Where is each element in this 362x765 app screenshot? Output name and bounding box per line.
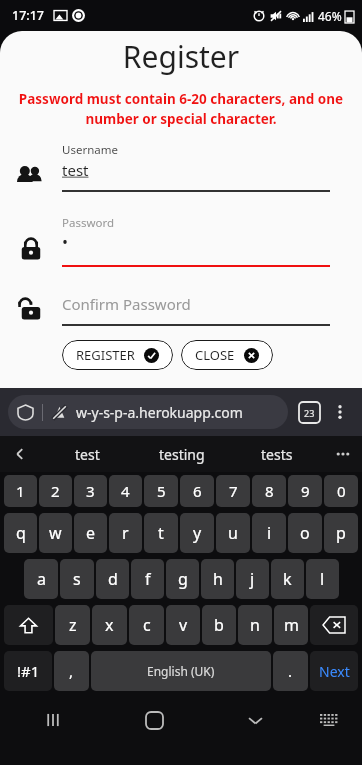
button[interactable]: b bbox=[202, 605, 236, 645]
staticText: c bbox=[143, 614, 151, 636]
button[interactable]: j bbox=[236, 559, 269, 599]
button[interactable]: English (UK) bbox=[91, 651, 271, 691]
button[interactable]: 8 bbox=[252, 475, 286, 507]
button[interactable]: Recents bbox=[31, 698, 75, 742]
button[interactable]: Change keyboard bbox=[307, 698, 351, 742]
staticText: test bbox=[75, 445, 100, 464]
staticText: 7 bbox=[229, 481, 238, 501]
button[interactable]: More suggestions bbox=[324, 436, 362, 472]
staticText: x bbox=[105, 614, 114, 636]
button[interactable]: 4 bbox=[109, 475, 142, 507]
button[interactable]: tests bbox=[229, 436, 324, 472]
staticText: e bbox=[86, 522, 96, 544]
button[interactable]: 1 bbox=[4, 475, 37, 507]
button[interactable]: w-y-s-p-a.herokuapp.com bbox=[8, 395, 288, 429]
button[interactable]: Hide keyboard bbox=[233, 698, 277, 742]
staticText: y bbox=[193, 522, 202, 544]
staticText: 5 bbox=[157, 481, 166, 501]
staticText: w-y-s-p-a.herokuapp.com bbox=[76, 403, 243, 422]
staticText: r bbox=[122, 522, 129, 544]
button[interactable]: Back bbox=[0, 436, 40, 472]
button[interactable]: m bbox=[274, 605, 308, 645]
button[interactable]: s bbox=[60, 559, 94, 599]
button[interactable]: . bbox=[273, 651, 308, 691]
button[interactable]: r bbox=[109, 513, 142, 553]
staticText: Next bbox=[319, 662, 350, 681]
button[interactable]: Backspace bbox=[310, 605, 358, 645]
button[interactable]: !#1 bbox=[4, 651, 52, 691]
button[interactable]: Shift bbox=[4, 605, 53, 645]
button[interactable]: p bbox=[324, 513, 358, 553]
button[interactable]: l bbox=[306, 559, 339, 599]
button[interactable]: w bbox=[39, 513, 72, 553]
staticText: w bbox=[49, 522, 62, 544]
button[interactable]: q bbox=[4, 513, 37, 553]
staticText: p bbox=[336, 522, 346, 544]
staticText: 9 bbox=[301, 481, 310, 501]
button[interactable]: t bbox=[144, 513, 178, 553]
button[interactable]: testing bbox=[134, 436, 229, 472]
staticText: q bbox=[16, 522, 26, 544]
button[interactable]: 9 bbox=[288, 475, 322, 507]
button[interactable]: c bbox=[129, 605, 164, 645]
button[interactable]: 6 bbox=[180, 475, 214, 507]
staticText: 1 bbox=[16, 481, 25, 501]
button[interactable]: test bbox=[40, 436, 134, 472]
button[interactable]: h bbox=[201, 559, 234, 599]
button[interactable]: y bbox=[180, 513, 214, 553]
staticText: i bbox=[267, 522, 272, 544]
staticText: 6 bbox=[193, 481, 202, 501]
staticText: 0 bbox=[337, 481, 346, 501]
button[interactable]: o bbox=[288, 513, 322, 553]
button[interactable]: e bbox=[74, 513, 107, 553]
button[interactable]: CLOSE bbox=[181, 340, 273, 370]
staticText: h bbox=[213, 568, 223, 590]
staticText: testing bbox=[159, 445, 205, 464]
staticText: n bbox=[250, 614, 260, 636]
staticText: u bbox=[228, 522, 238, 544]
staticText: a bbox=[37, 568, 46, 590]
staticText: l bbox=[320, 568, 325, 590]
staticText: m bbox=[284, 614, 299, 636]
staticText: d bbox=[108, 568, 118, 590]
button[interactable]: n bbox=[238, 605, 272, 645]
staticText: , bbox=[69, 661, 74, 681]
staticText: CLOSE bbox=[195, 346, 235, 364]
staticText: 17:17 bbox=[12, 7, 45, 24]
staticText: Register bbox=[0, 36, 362, 77]
staticText: o bbox=[300, 522, 310, 544]
button[interactable]: z bbox=[55, 605, 90, 645]
button[interactable]: d bbox=[96, 559, 129, 599]
button[interactable]: v bbox=[166, 605, 200, 645]
button[interactable]: u bbox=[216, 513, 250, 553]
staticText: s bbox=[73, 568, 81, 590]
staticText: tests bbox=[261, 445, 293, 464]
staticText: Password bbox=[62, 215, 115, 231]
staticText: Confirm Password bbox=[62, 294, 191, 314]
button[interactable]: i bbox=[252, 513, 286, 553]
button[interactable]: 5 bbox=[144, 475, 178, 507]
button[interactable]: g bbox=[166, 559, 199, 599]
staticText: j bbox=[250, 568, 255, 590]
button[interactable]: More options bbox=[328, 400, 352, 424]
button[interactable]: f bbox=[131, 559, 164, 599]
staticText: v bbox=[179, 614, 188, 636]
staticText: b bbox=[214, 614, 224, 636]
button[interactable]: Tabs bbox=[299, 402, 320, 423]
button[interactable]: x bbox=[92, 605, 127, 645]
staticText: 46% bbox=[318, 8, 342, 24]
staticText: 2 bbox=[51, 481, 60, 501]
button[interactable]: REGISTER bbox=[62, 340, 173, 370]
button[interactable]: , bbox=[54, 651, 89, 691]
staticText: English (UK) bbox=[147, 663, 215, 679]
staticText: k bbox=[283, 568, 292, 590]
button[interactable]: 2 bbox=[39, 475, 72, 507]
staticText: 8 bbox=[265, 481, 274, 501]
button[interactable]: a bbox=[24, 559, 58, 599]
button[interactable]: 7 bbox=[216, 475, 250, 507]
button[interactable]: k bbox=[271, 559, 304, 599]
button[interactable]: 0 bbox=[324, 475, 358, 507]
button[interactable]: Next bbox=[310, 651, 358, 691]
button[interactable]: 3 bbox=[74, 475, 107, 507]
button[interactable]: Home bbox=[132, 698, 176, 742]
